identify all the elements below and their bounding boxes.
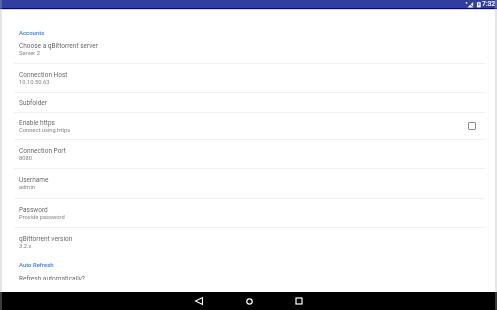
staticText: Server 2 — [19, 50, 40, 57]
staticText: Connection Host — [19, 71, 68, 79]
button[interactable]: Recent apps — [286, 292, 312, 310]
staticText: Subfolder — [19, 99, 47, 107]
button[interactable]: Back — [186, 292, 212, 310]
button[interactable]: Username — [0, 169, 497, 198]
staticText: Choose a qBittorrent server — [19, 42, 98, 50]
button[interactable]: Password — [0, 199, 497, 227]
button[interactable]: Connection Host — [0, 64, 497, 92]
staticText: qBittorrent version — [19, 235, 73, 243]
staticText: admin — [19, 184, 35, 191]
staticText: Password — [19, 206, 48, 214]
staticText: Provide password — [19, 214, 65, 221]
button[interactable]: qBittorrent version — [0, 228, 497, 256]
staticText: Enable https — [19, 119, 55, 127]
staticText: Username — [19, 176, 49, 184]
staticText: Auto Refresh — [19, 261, 54, 268]
staticText: Refresh automatically? — [19, 275, 85, 280]
button[interactable]: Refresh automatically? — [0, 275, 497, 280]
button[interactable]: Subfolder — [0, 93, 497, 112]
button[interactable]: Enable https — [0, 113, 497, 139]
button[interactable]: Connection Port — [0, 140, 497, 168]
staticText: 8080 — [19, 155, 32, 162]
staticText: 7:32 — [482, 0, 495, 8]
staticText: Connect using https — [19, 127, 71, 134]
staticText: 10.10.50.63 — [19, 79, 50, 86]
button[interactable]: Choose a qBittorrent server — [0, 35, 497, 63]
staticText: Connection Port — [19, 147, 66, 155]
staticText: Accounts — [19, 29, 45, 35]
staticText: 3.2.x — [19, 243, 32, 250]
button[interactable]: Home — [236, 292, 262, 310]
